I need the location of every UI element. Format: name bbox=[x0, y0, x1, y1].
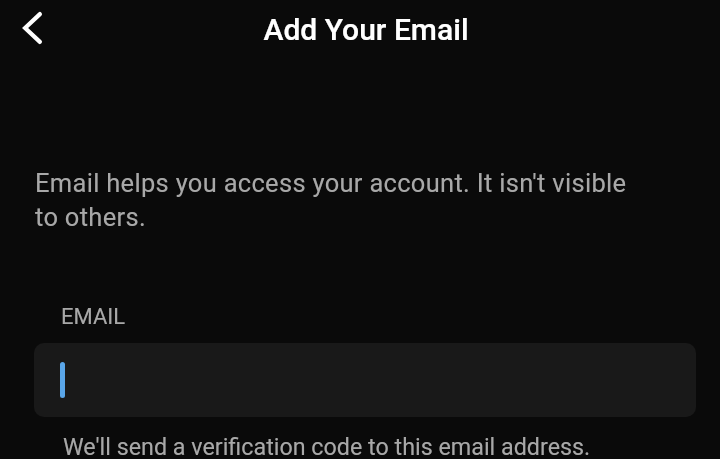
button[interactable]: Email address input field bbox=[34, 343, 696, 417]
button[interactable]: Back bbox=[4, 0, 60, 56]
staticText: Add Your Email bbox=[6, 12, 720, 47]
staticText: We'll send a verification code to this e… bbox=[63, 433, 591, 459]
staticText: Email helps you access your account. It … bbox=[35, 168, 635, 233]
staticText: EMAIL bbox=[61, 304, 126, 330]
